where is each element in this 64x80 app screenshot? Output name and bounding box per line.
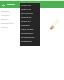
- button[interactable]: Clear list: [20, 2, 40, 6]
- button[interactable]: Account: [1, 13, 63, 17]
- button[interactable]: Refresh: [20, 22, 40, 26]
- staticText: Group by: [21, 15, 32, 18]
- button[interactable]: Properties: [20, 30, 40, 34]
- button[interactable]: Show all: [20, 18, 40, 22]
- staticText: Clear list: [21, 3, 31, 6]
- button[interactable]: New folder: [20, 26, 40, 30]
- staticText: About: [1, 26, 8, 29]
- staticText: Privacy: [1, 18, 9, 21]
- staticText: New folder: [21, 27, 34, 30]
- button[interactable]: Sort name: [20, 10, 40, 14]
- button[interactable]: Display size: [1, 21, 63, 25]
- staticText: General: [1, 10, 10, 13]
- staticText: Sort name: [21, 11, 33, 14]
- staticText: Show all: [21, 19, 31, 22]
- staticText: Feedback: [21, 39, 32, 42]
- staticText: Select all: [21, 7, 32, 10]
- staticText: Properties: [21, 31, 33, 34]
- staticText: Settings: [7, 3, 15, 6]
- button[interactable]: Privacy: [1, 17, 63, 21]
- button[interactable]: Feedback: [20, 38, 40, 42]
- button[interactable]: Select all: [20, 6, 40, 10]
- button[interactable]: About: [1, 25, 63, 29]
- staticText: Display size: [1, 22, 14, 25]
- button[interactable]: Group by: [20, 14, 40, 18]
- staticText: Account: [1, 14, 10, 17]
- button[interactable]: General: [1, 9, 63, 13]
- button[interactable]: Back: [0, 2, 6, 8]
- staticText: Refresh: [21, 23, 30, 26]
- staticText: Preferences: [21, 35, 35, 38]
- button[interactable]: Preferences: [20, 34, 40, 38]
